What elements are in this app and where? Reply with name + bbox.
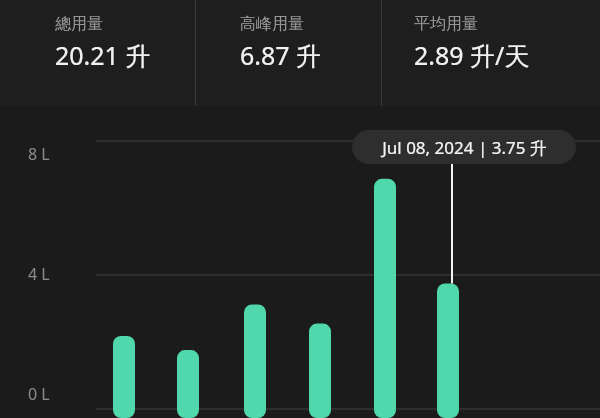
staticText: 20.21 升: [55, 38, 151, 72]
staticText: 8 L: [28, 143, 50, 165]
button[interactable]: Jul 08, 2024 | 3.75 升: [352, 130, 576, 164]
staticText: 0 L: [28, 383, 50, 405]
staticText: Jul 08, 2024 | 3.75 升: [382, 136, 547, 159]
button[interactable]: 高峰用量: [240, 14, 328, 72]
staticText: 平均用量: [414, 14, 478, 34]
staticText: 4 L: [28, 263, 50, 285]
staticText: 2.89 升/天: [414, 38, 530, 72]
staticText: 6.87 升: [240, 38, 322, 72]
staticText: 高峰用量: [240, 14, 304, 34]
button[interactable]: 總用量: [55, 14, 157, 72]
button[interactable]: 平均用量: [414, 14, 536, 72]
staticText: 總用量: [55, 14, 103, 34]
